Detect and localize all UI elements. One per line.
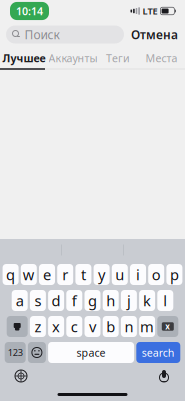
staticText: l (163, 291, 167, 310)
button[interactable]: q (3, 264, 19, 285)
button[interactable]: s (30, 290, 46, 311)
staticText: o (152, 265, 161, 284)
button[interactable]: Emoji (28, 342, 46, 363)
button[interactable]: Лучшее (0, 48, 48, 68)
button[interactable]: Отмена (124, 22, 185, 47)
staticText: r (62, 265, 68, 284)
staticText: m (140, 317, 154, 336)
button[interactable]: d (48, 290, 64, 311)
staticText: s (34, 291, 41, 310)
button[interactable]: p (166, 264, 182, 285)
staticText: y (98, 265, 105, 284)
staticText: a (16, 291, 24, 310)
staticText: x (52, 317, 60, 336)
staticText: g (88, 291, 97, 310)
staticText: 123 (8, 346, 23, 359)
button[interactable]: Аккаунты (48, 48, 98, 68)
button[interactable]: m (139, 316, 155, 337)
button[interactable]: search (136, 342, 180, 363)
button[interactable]: v (84, 316, 100, 337)
staticText: search (142, 345, 175, 360)
button[interactable]: n (121, 316, 137, 337)
staticText: Аккаунты (48, 51, 97, 65)
button[interactable]: w (21, 264, 37, 285)
staticText: p (170, 265, 179, 284)
button[interactable]: h (103, 290, 119, 311)
button[interactable]: x (48, 316, 64, 337)
staticText: x (165, 321, 170, 332)
staticText: space (77, 345, 106, 360)
button[interactable]: u (112, 264, 128, 285)
staticText: i (136, 265, 140, 284)
staticText: u (115, 265, 124, 284)
staticText: LTE (142, 5, 157, 17)
button[interactable]: k (139, 290, 155, 311)
staticText: Лучшее (2, 51, 45, 65)
button[interactable]: z (30, 316, 46, 337)
button[interactable]: r (57, 264, 73, 285)
button[interactable]: b (103, 316, 119, 337)
button[interactable]: Dictation (151, 364, 177, 388)
staticText: z (34, 317, 41, 336)
button[interactable]: space (48, 342, 134, 363)
staticText: d (52, 291, 61, 310)
button[interactable]: Места (138, 48, 185, 68)
button[interactable]: 123 (5, 342, 26, 363)
staticText: n (124, 317, 133, 336)
staticText: 10:14 (16, 4, 43, 18)
button[interactable]: l (157, 290, 173, 311)
staticText: c (71, 317, 78, 336)
button[interactable]: y (94, 264, 110, 285)
button[interactable]: o (148, 264, 164, 285)
button[interactable]: Теги (98, 48, 138, 68)
button[interactable]: Shift (7, 316, 28, 337)
staticText: Поиск (24, 26, 59, 42)
button[interactable]: t (75, 264, 91, 285)
staticText: t (81, 265, 86, 284)
staticText: k (143, 291, 151, 310)
button[interactable]: f (66, 290, 82, 311)
button[interactable]: j (121, 290, 137, 311)
button[interactable]: e (39, 264, 55, 285)
button[interactable]: c (66, 316, 82, 337)
staticText: j (127, 291, 131, 310)
button[interactable]: a (12, 290, 28, 311)
staticText: Места (145, 51, 177, 65)
staticText: w (23, 265, 35, 284)
button[interactable]: Switch keyboard (8, 364, 34, 388)
staticText: h (106, 291, 115, 310)
button[interactable]: g (84, 290, 100, 311)
staticText: f (72, 291, 77, 310)
staticText: b (106, 317, 115, 336)
staticText: e (43, 265, 51, 284)
button[interactable]: i (130, 264, 146, 285)
staticText: v (89, 317, 96, 336)
button[interactable]: Delete (157, 316, 178, 337)
staticText: Теги (106, 51, 130, 65)
staticText: q (6, 265, 15, 284)
staticText: Отмена (131, 26, 178, 42)
